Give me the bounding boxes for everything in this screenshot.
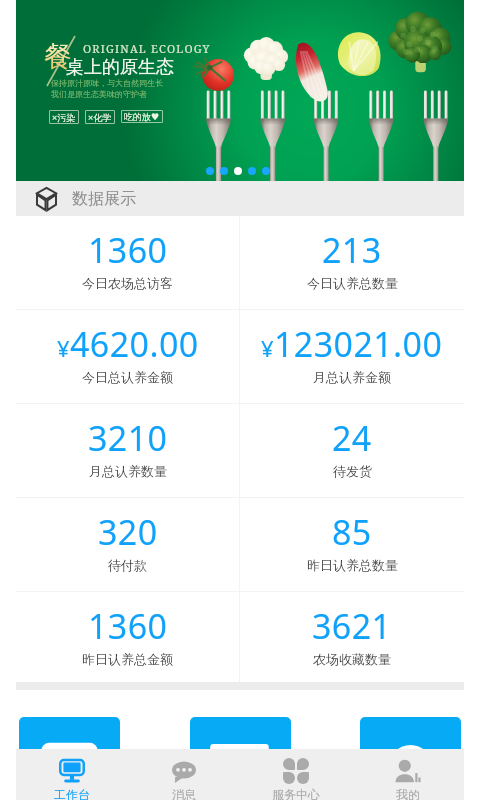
staticText: 工作台 — [54, 787, 90, 800]
staticText: ORIGINAL ECOLOGY — [83, 41, 211, 56]
button[interactable]: 213 — [240, 216, 464, 309]
staticText: 吃的放♥ — [124, 111, 160, 122]
staticText: 服务中心 — [272, 787, 320, 800]
staticText: 今日认养总数量 — [307, 275, 398, 291]
button[interactable]: 消息 — [128, 749, 240, 800]
staticText: ¥ — [57, 333, 70, 363]
button[interactable]: 24 — [240, 404, 464, 497]
staticText: 今日总认养金额 — [82, 369, 173, 385]
staticText: 3621 — [312, 603, 392, 649]
staticText: 我们是原生态美味的守护者 — [51, 89, 147, 99]
staticText: 农场收藏数量 — [313, 651, 391, 667]
button[interactable]: 我的 — [352, 749, 464, 800]
staticText: ×化学 — [88, 111, 112, 123]
staticText: 保持原汁原味，与大自然同生长 — [51, 78, 163, 88]
staticText: 123021.00 — [274, 321, 443, 367]
button[interactable]: ¥ — [240, 310, 464, 403]
button[interactable]: 1360 — [16, 592, 239, 685]
staticText: 85 — [332, 509, 372, 555]
button[interactable] — [19, 717, 120, 777]
button[interactable]: 320 — [16, 498, 239, 591]
staticText: 月总认养金额 — [313, 369, 391, 385]
staticText: ¥ — [261, 333, 274, 363]
staticText: 昨日认养总金额 — [82, 651, 173, 667]
staticText: 桌上的原生态 — [66, 56, 174, 79]
staticText: 消息 — [172, 787, 196, 800]
staticText: 待发货 — [333, 463, 372, 479]
button[interactable] — [360, 717, 461, 777]
staticText: 320 — [98, 509, 158, 555]
staticText: 1360 — [88, 603, 168, 649]
other: 服务中心 — [283, 758, 309, 784]
staticText: 月总认养数量 — [89, 463, 167, 479]
staticText: 1360 — [88, 227, 168, 273]
button[interactable]: 85 — [240, 498, 464, 591]
button[interactable] — [190, 717, 291, 777]
staticText: 餐 — [44, 39, 72, 74]
button[interactable]: 餐 — [16, 0, 464, 181]
staticText: 数据展示 — [72, 189, 136, 209]
staticText: 213 — [322, 227, 382, 273]
button[interactable]: 工作台 — [16, 749, 128, 800]
staticText: 今日农场总访客 — [82, 275, 173, 291]
button[interactable]: 服务中心 — [240, 749, 352, 800]
other: 我的 — [395, 758, 421, 784]
button[interactable]: 3210 — [16, 404, 239, 497]
staticText: 昨日认养总数量 — [307, 557, 398, 573]
staticText: 24 — [332, 415, 372, 461]
button[interactable]: ¥ — [16, 310, 239, 403]
button[interactable]: 3621 — [240, 592, 464, 685]
button[interactable]: 数据展示 — [16, 181, 464, 216]
other: 消息 — [171, 758, 197, 784]
staticText: 待付款 — [108, 557, 147, 573]
staticText: ×污染 — [52, 111, 76, 123]
staticText: 3210 — [88, 415, 168, 461]
button[interactable]: 1360 — [16, 216, 239, 309]
staticText: 我的 — [396, 787, 420, 800]
staticText: 4620.00 — [70, 321, 199, 367]
other: 工作台 — [59, 758, 85, 784]
